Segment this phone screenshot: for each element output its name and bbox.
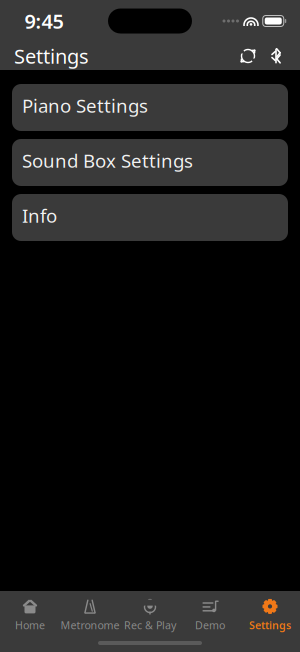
button[interactable]: Home [0, 598, 60, 632]
staticText: 9:45 [24, 8, 63, 34]
staticText: Rec & Play [124, 618, 176, 632]
button[interactable]: Sound Box Settings [12, 139, 288, 186]
button[interactable]: Piano Settings [12, 84, 288, 131]
staticText: Demo [195, 618, 225, 632]
staticText: Piano Settings [22, 93, 148, 118]
staticText: Home [15, 618, 45, 632]
staticText: Settings [14, 43, 89, 69]
button[interactable]: Settings [240, 598, 300, 632]
button[interactable]: Bluetooth [262, 42, 290, 70]
staticText: Sound Box Settings [22, 148, 193, 173]
staticText: Settings [249, 618, 291, 632]
button[interactable]: Metronome [60, 598, 120, 632]
button[interactable]: Demo [180, 598, 240, 632]
button[interactable]: Rec & Play [120, 598, 180, 632]
staticText: Metronome [60, 618, 119, 632]
staticText: Info [22, 203, 57, 228]
button[interactable]: Info [12, 194, 288, 241]
button[interactable]: Sync [234, 42, 262, 70]
